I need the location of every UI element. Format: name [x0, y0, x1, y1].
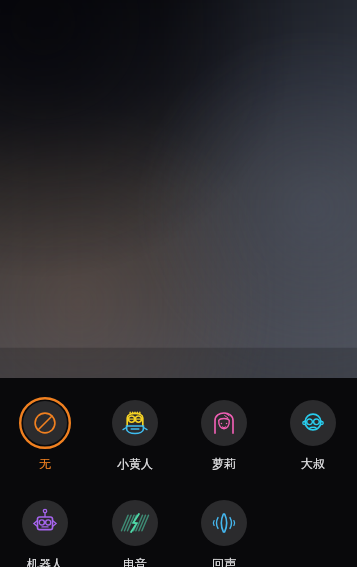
staticText: 萝莉 [212, 456, 236, 471]
button[interactable]: 大叔 [268, 397, 357, 471]
staticText: 小黄人 [117, 456, 153, 471]
staticText: 大叔 [301, 456, 325, 471]
staticText: 机器人 [27, 556, 63, 567]
button[interactable]: 回声 [179, 497, 268, 567]
staticText: 电音 [123, 556, 147, 567]
button[interactable]: 萝莉 [179, 397, 268, 471]
button[interactable]: 电音 [90, 497, 179, 567]
button[interactable]: 无 [0, 397, 90, 471]
staticText: 无 [39, 456, 51, 471]
button[interactable]: 小黄人 [90, 397, 179, 471]
staticText: 回声 [212, 556, 236, 567]
button[interactable]: 机器人 [0, 497, 90, 567]
